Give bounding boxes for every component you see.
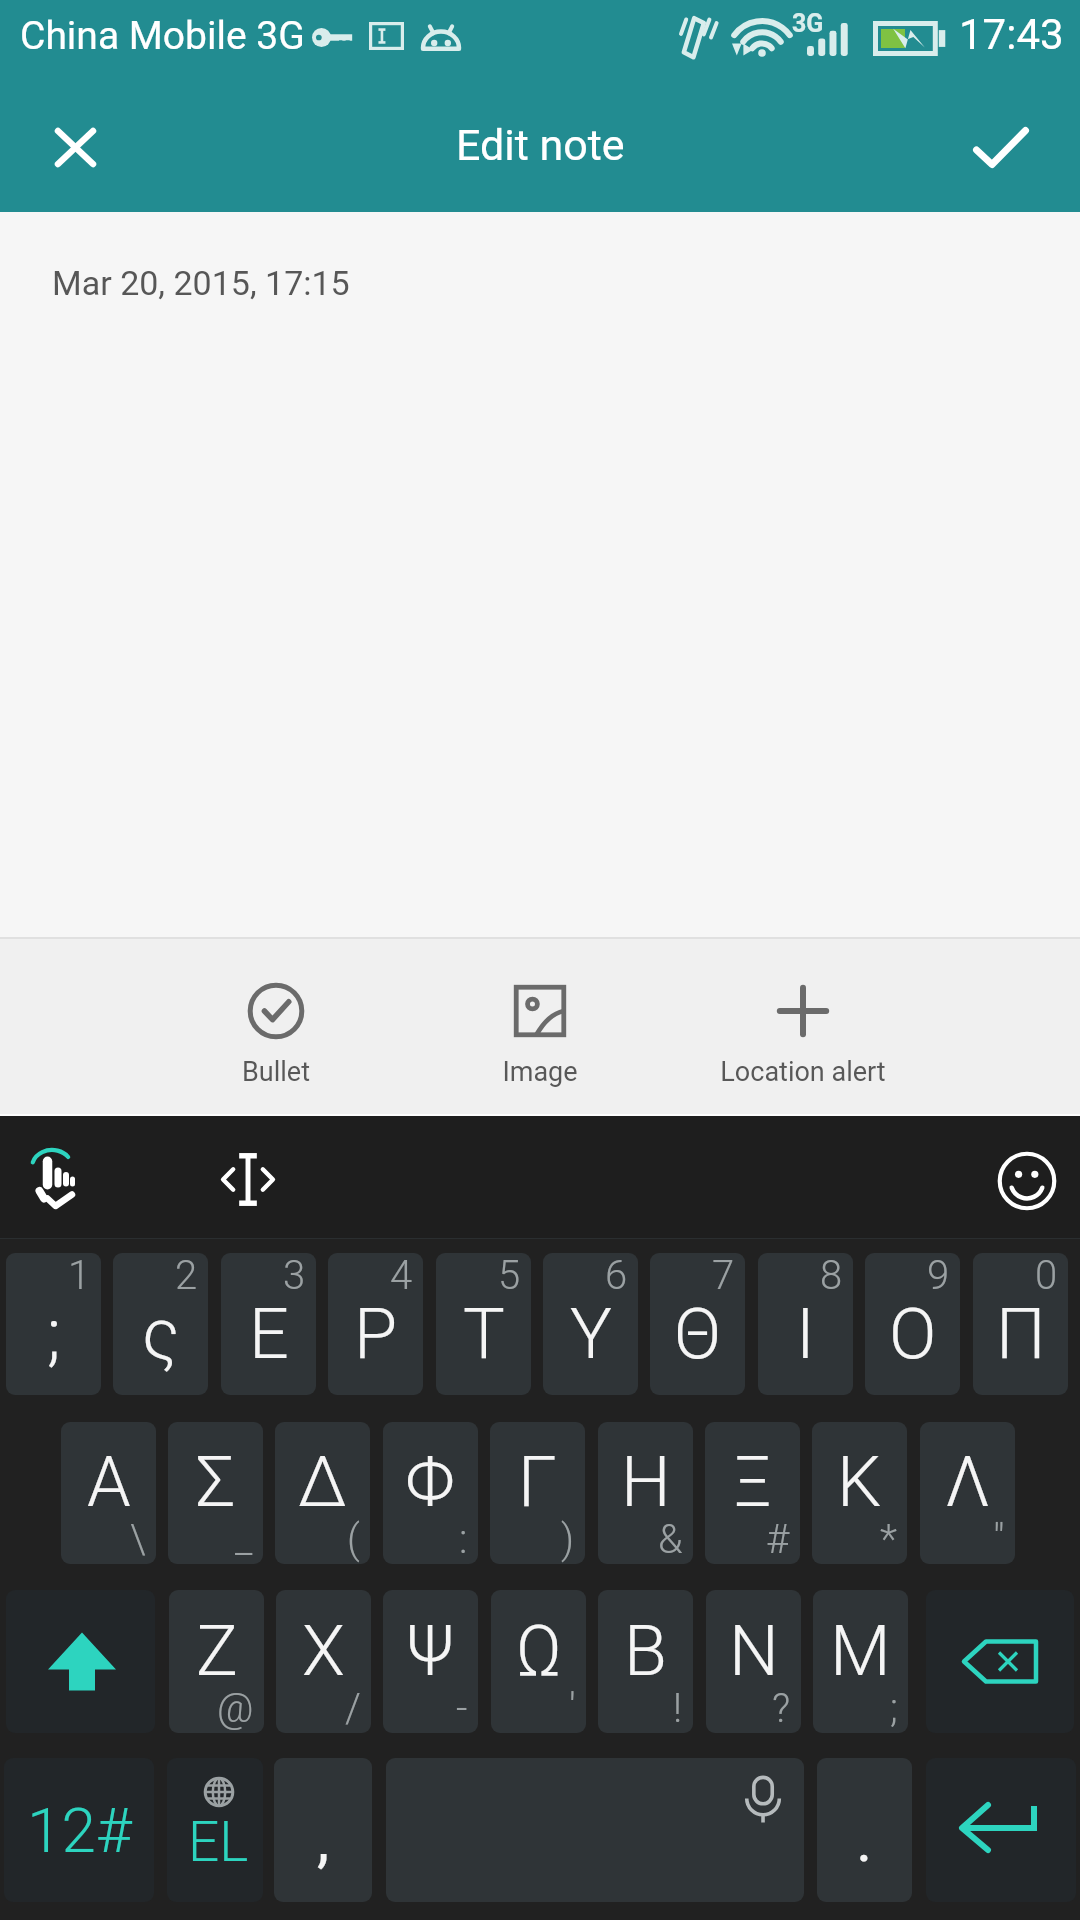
button[interactable]: ς [113, 1253, 208, 1395]
button[interactable]: Change language [167, 1758, 263, 1902]
staticText: 9 [927, 1253, 950, 1299]
staticText: Ψ [406, 1610, 455, 1692]
staticText: 3 [283, 1253, 306, 1299]
button[interactable]: Ν [706, 1590, 801, 1733]
button[interactable]: Space [386, 1758, 804, 1902]
button[interactable]: Location alert [678, 963, 928, 1106]
staticText: Edit note [456, 120, 625, 170]
staticText: Α [87, 1441, 131, 1523]
staticText: Location alert [720, 1056, 886, 1088]
button[interactable]: Υ [543, 1253, 638, 1395]
staticText: Υ [570, 1293, 612, 1375]
staticText: 5 [498, 1253, 521, 1299]
button[interactable]: Ζ [169, 1590, 264, 1733]
button[interactable]: Θ [650, 1253, 745, 1395]
button[interactable]: Κ [812, 1422, 907, 1564]
staticText: * [880, 1516, 897, 1563]
staticText: Θ [674, 1293, 722, 1375]
staticText: Mar 20, 2015, 17:15 [52, 263, 350, 303]
button[interactable]: Backspace [926, 1590, 1074, 1733]
staticText: / [345, 1685, 361, 1732]
button[interactable]: Bullet [151, 963, 401, 1106]
button[interactable]: Move cursor [208, 1139, 288, 1219]
staticText: ! [673, 1685, 683, 1732]
staticText: Κ [837, 1441, 882, 1523]
button[interactable]: Handwriting input [12, 1138, 90, 1216]
staticText: Φ [405, 1441, 456, 1523]
button[interactable]: Λ [920, 1422, 1015, 1564]
button[interactable]: Save [926, 80, 1076, 214]
button[interactable]: Φ [383, 1422, 478, 1564]
button[interactable]: ; [6, 1253, 101, 1395]
staticText: EL [188, 1810, 249, 1874]
staticText: # [766, 1516, 790, 1563]
button[interactable]: Β [598, 1590, 693, 1733]
staticText: - [456, 1685, 468, 1732]
button[interactable]: Shift [6, 1590, 155, 1733]
staticText: Π [996, 1293, 1046, 1375]
staticText: Η [621, 1441, 671, 1523]
staticText: & [658, 1516, 683, 1563]
button[interactable]: 12# [4, 1758, 154, 1902]
staticText: 6 [605, 1253, 628, 1299]
staticText: ? [772, 1685, 791, 1732]
staticText: Δ [298, 1441, 347, 1523]
staticText: ; [47, 1293, 61, 1375]
button[interactable]: Image [415, 963, 665, 1106]
staticText: ( [347, 1516, 360, 1563]
button[interactable]: Π [973, 1253, 1068, 1395]
staticText: Ω [516, 1610, 562, 1692]
staticText: Ε [249, 1293, 289, 1375]
staticText: 4 [390, 1253, 413, 1299]
button[interactable]: , [274, 1758, 372, 1902]
staticText: ) [561, 1516, 575, 1563]
staticText: Τ [463, 1293, 505, 1375]
button[interactable]: Δ [275, 1422, 370, 1564]
staticText: : [459, 1516, 468, 1563]
button[interactable]: Τ [436, 1253, 531, 1395]
button[interactable]: Ε [221, 1253, 316, 1395]
button[interactable]: . [817, 1758, 912, 1902]
staticText: 7 [712, 1253, 735, 1299]
staticText: Λ [945, 1441, 991, 1523]
staticText: Bullet [242, 1056, 310, 1088]
staticText: Σ [196, 1441, 236, 1523]
staticText: Μ [830, 1610, 891, 1692]
staticText: 8 [820, 1253, 843, 1299]
button[interactable]: Γ [490, 1422, 585, 1564]
staticText: Ι [796, 1293, 815, 1375]
staticText: \ [130, 1516, 146, 1563]
button[interactable]: Ψ [383, 1590, 478, 1733]
button[interactable]: Ρ [328, 1253, 423, 1395]
button[interactable]: Ι [758, 1253, 853, 1395]
button[interactable]: Μ [813, 1590, 908, 1733]
staticText: , [317, 1803, 330, 1876]
button[interactable]: Η [598, 1422, 693, 1564]
button[interactable]: Enter [926, 1758, 1076, 1902]
staticText: 1 [68, 1253, 91, 1299]
button[interactable]: Χ [276, 1590, 371, 1733]
staticText: Ρ [354, 1293, 398, 1375]
staticText: 17:43 [959, 10, 1064, 59]
button[interactable]: Ω [491, 1590, 586, 1733]
staticText: Β [624, 1610, 667, 1692]
staticText: 2 [175, 1253, 198, 1299]
button[interactable]: Ο [865, 1253, 960, 1395]
staticText: China Mobile 3G [20, 13, 305, 59]
staticText: 0 [1035, 1253, 1058, 1299]
button[interactable]: Ξ [705, 1422, 800, 1564]
staticText: ; [890, 1685, 898, 1732]
staticText: Ζ [196, 1610, 238, 1692]
button[interactable]: Close [0, 80, 150, 214]
staticText: 12# [27, 1794, 132, 1867]
button[interactable]: Emoji [988, 1139, 1068, 1219]
staticText: Χ [302, 1610, 345, 1692]
staticText: _ [235, 1516, 253, 1563]
staticText: Ο [889, 1293, 937, 1375]
staticText: Γ [518, 1441, 557, 1523]
button[interactable]: Σ [168, 1422, 263, 1564]
staticText: ' [569, 1685, 576, 1732]
staticText: Ν [729, 1610, 779, 1692]
staticText: @ [217, 1685, 254, 1732]
button[interactable]: Α [61, 1422, 156, 1564]
